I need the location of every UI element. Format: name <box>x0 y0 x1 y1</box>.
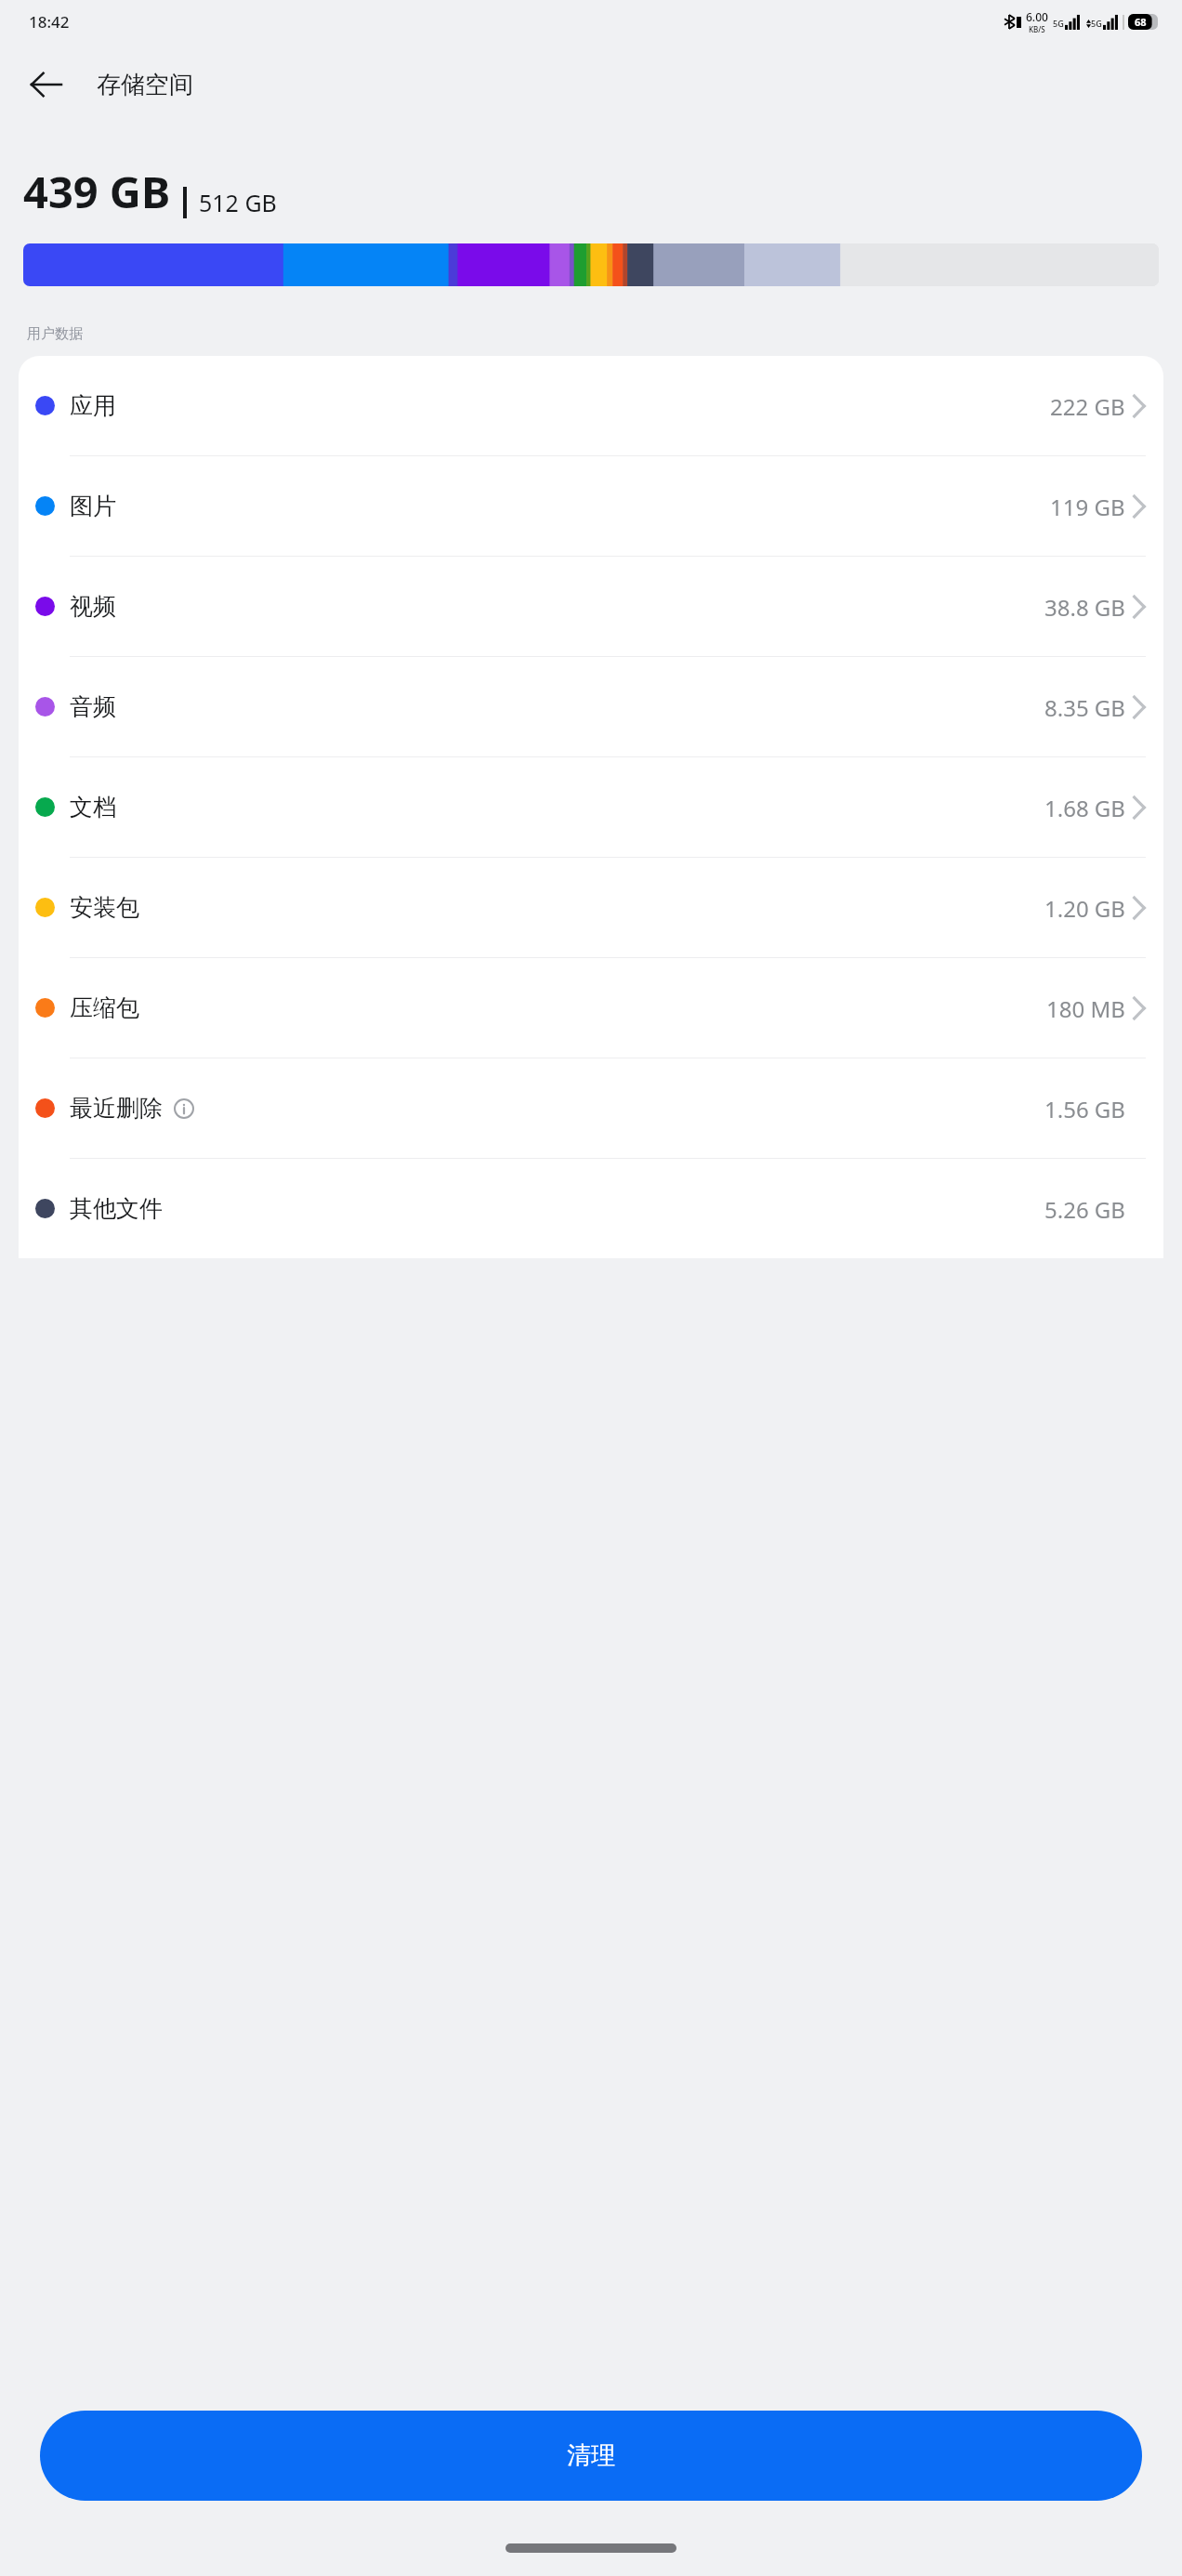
staticText: KB/S <box>1029 24 1045 34</box>
staticText: 安装包 <box>70 893 139 922</box>
button[interactable]: More information <box>174 1098 194 1119</box>
staticText: 1.68 GB <box>1044 793 1125 823</box>
button[interactable]: Back <box>13 51 80 118</box>
staticText: 视频 <box>70 592 116 621</box>
staticText: 18:42 <box>29 11 70 33</box>
button[interactable]: 其他文件 <box>19 1159 1163 1258</box>
staticText: 68 <box>1135 15 1147 29</box>
staticText: 音频 <box>70 692 116 721</box>
button[interactable]: 文档 <box>19 757 1163 857</box>
staticText: 1.20 GB <box>1044 893 1125 924</box>
button[interactable]: 音频 <box>19 657 1163 756</box>
staticText: 6.00 <box>1026 9 1048 24</box>
staticText: 用户数据 <box>27 325 83 343</box>
staticText: 119 GB <box>1050 492 1125 522</box>
button[interactable]: 应用 <box>19 356 1163 455</box>
staticText: 清理 <box>567 2440 615 2471</box>
button[interactable]: 安装包 <box>19 858 1163 957</box>
staticText: 5G <box>1091 18 1102 29</box>
staticText: 存储空间 <box>97 70 193 100</box>
staticText: 38.8 GB <box>1044 592 1125 623</box>
staticText: 5.26 GB <box>1044 1194 1125 1225</box>
button[interactable]: 最近删除 <box>19 1058 1163 1158</box>
staticText: 图片 <box>70 492 116 520</box>
staticText: 512 GB <box>199 187 277 218</box>
staticText: 180 MB <box>1046 993 1125 1024</box>
staticText: 文档 <box>70 793 116 821</box>
staticText: 压缩包 <box>70 993 139 1022</box>
staticText: 其他文件 <box>70 1194 163 1223</box>
staticText: 222 GB <box>1050 391 1125 422</box>
button[interactable]: 压缩包 <box>19 958 1163 1058</box>
staticText: 5G <box>1053 18 1064 29</box>
staticText: 439 GB <box>23 162 171 221</box>
staticText: 1.56 GB <box>1044 1094 1125 1124</box>
button[interactable]: 视频 <box>19 557 1163 656</box>
staticText: 最近删除 <box>70 1094 163 1123</box>
button[interactable]: 图片 <box>19 456 1163 556</box>
staticText: 应用 <box>70 391 116 420</box>
button[interactable]: 清理 <box>40 2411 1142 2501</box>
staticText: 8.35 GB <box>1044 692 1125 723</box>
